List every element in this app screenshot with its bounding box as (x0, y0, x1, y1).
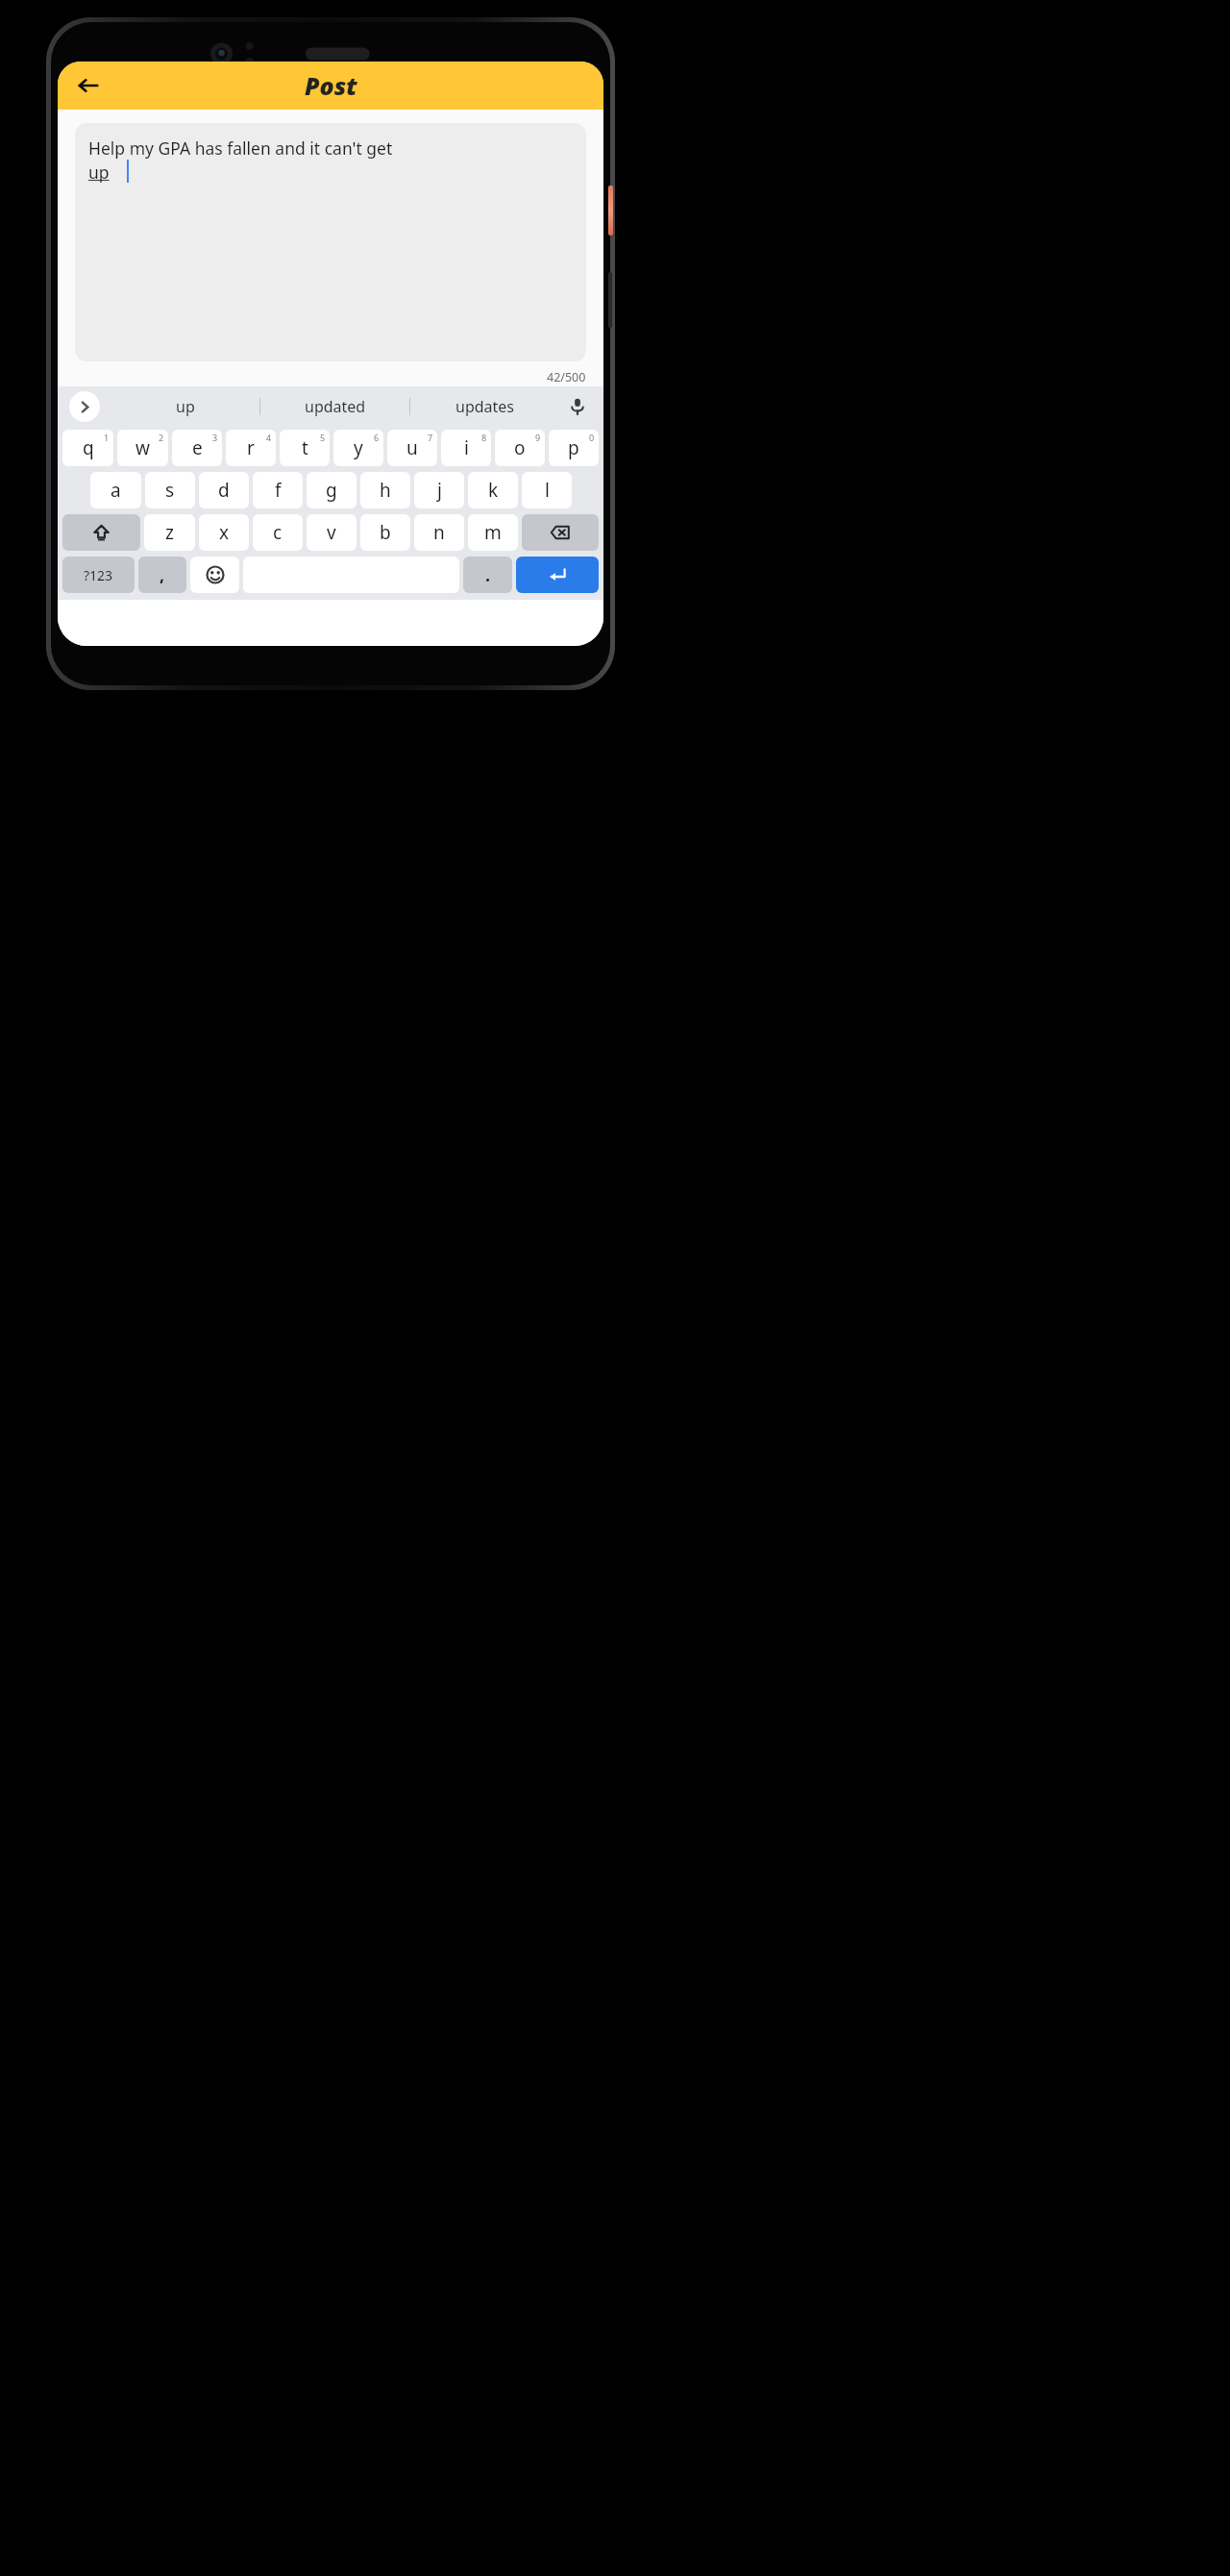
staticText: 6 (374, 432, 380, 443)
staticText: o (514, 435, 526, 460)
staticText: 5 (320, 432, 326, 443)
staticText: k (488, 478, 499, 503)
button[interactable]: Shift (62, 514, 140, 551)
staticText: p (568, 435, 579, 460)
staticText: y (354, 435, 363, 460)
staticText: 2 (159, 432, 164, 443)
staticText: 42/500 (547, 369, 586, 385)
button[interactable]: o (495, 430, 545, 466)
staticText: q (83, 435, 94, 460)
staticText: updated (305, 396, 366, 417)
staticText: x (219, 520, 230, 545)
button[interactable]: m (468, 514, 518, 551)
button[interactable]: updates (410, 386, 559, 427)
staticText: 0 (589, 432, 595, 443)
staticText: ?123 (84, 566, 113, 584)
button[interactable]: Help my GPA has fallen and it can't get … (75, 123, 586, 361)
staticText: t (302, 435, 308, 460)
staticText: u (406, 435, 418, 460)
staticText: Help my GPA has fallen and it can't get … (88, 136, 393, 184)
staticText: b (380, 520, 391, 545)
staticText: up (176, 396, 195, 417)
button[interactable]: updated (260, 386, 409, 427)
staticText: l (545, 478, 550, 503)
staticText: 7 (428, 432, 433, 443)
staticText: 8 (481, 432, 487, 443)
button[interactable]: j (414, 472, 464, 508)
button[interactable]: w (117, 430, 168, 466)
button[interactable]: n (414, 514, 464, 551)
button[interactable]: Comma (138, 557, 186, 593)
staticText: updates (455, 396, 515, 417)
button[interactable]: h (360, 472, 410, 508)
button[interactable]: l (522, 472, 572, 508)
staticText: 1 (104, 432, 110, 443)
staticText: 4 (266, 432, 272, 443)
button[interactable]: Symbols (62, 557, 135, 593)
button[interactable]: i (441, 430, 491, 466)
button[interactable]: Voice input (563, 392, 592, 421)
button[interactable]: Back (69, 66, 108, 105)
button[interactable]: u (387, 430, 437, 466)
staticText: a (111, 478, 121, 503)
staticText: 3 (212, 432, 218, 443)
button[interactable]: y (333, 430, 383, 466)
button[interactable]: f (253, 472, 303, 508)
staticText: . (485, 563, 491, 587)
staticText: f (275, 478, 282, 503)
staticText: s (165, 478, 175, 503)
staticText: r (247, 435, 255, 460)
button[interactable]: q (62, 430, 113, 466)
button[interactable]: r (226, 430, 276, 466)
button[interactable]: d (199, 472, 249, 508)
staticText: w (135, 435, 150, 460)
button[interactable]: up (111, 386, 259, 427)
staticText: , (160, 563, 165, 587)
button[interactable]: c (253, 514, 303, 551)
button[interactable]: a (90, 472, 141, 508)
staticText: d (218, 478, 230, 503)
staticText: i (464, 435, 469, 460)
button[interactable]: p (549, 430, 599, 466)
staticText: h (380, 478, 391, 503)
staticText: c (273, 520, 283, 545)
staticText: g (326, 478, 337, 503)
button[interactable]: Emoji (190, 557, 239, 593)
button[interactable]: Enter (516, 557, 599, 593)
staticText: 9 (535, 432, 541, 443)
button[interactable]: g (307, 472, 357, 508)
staticText: m (484, 520, 502, 545)
button[interactable]: z (144, 514, 195, 551)
staticText: j (437, 478, 442, 503)
staticText: v (327, 520, 336, 545)
button[interactable]: k (468, 472, 518, 508)
button[interactable]: x (199, 514, 249, 551)
button[interactable]: e (172, 430, 222, 466)
button[interactable]: More suggestions (69, 391, 100, 422)
staticText: e (192, 435, 203, 460)
button[interactable]: Backspace (522, 514, 599, 551)
staticText: n (433, 520, 445, 545)
button[interactable]: v (307, 514, 357, 551)
staticText: Post (305, 69, 357, 102)
button[interactable]: t (280, 430, 330, 466)
staticText: z (165, 520, 174, 545)
button[interactable]: b (360, 514, 410, 551)
button[interactable]: s (145, 472, 195, 508)
button[interactable]: Period (463, 557, 512, 593)
